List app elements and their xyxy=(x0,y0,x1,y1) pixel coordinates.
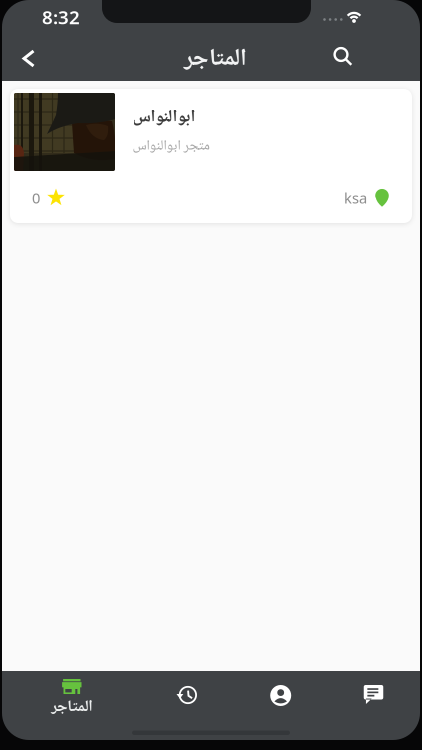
button[interactable]: Search xyxy=(318,38,366,81)
staticText: ابوالنواس xyxy=(132,103,195,132)
staticText: 0 xyxy=(32,188,40,207)
button[interactable]: Chat xyxy=(327,671,420,740)
button[interactable]: Back xyxy=(2,38,56,81)
staticText: المتاجر xyxy=(51,694,93,721)
button[interactable]: History xyxy=(141,671,234,740)
staticText: متجر ابوالنواس xyxy=(132,134,209,158)
button[interactable]: Profile xyxy=(234,671,327,740)
button[interactable]: ابوالنواس xyxy=(10,89,412,223)
staticText: المتاجر xyxy=(183,39,246,80)
staticText: ksa xyxy=(344,188,367,207)
staticText: 8:32 xyxy=(42,4,80,29)
button[interactable]: المتاجر xyxy=(2,671,141,740)
